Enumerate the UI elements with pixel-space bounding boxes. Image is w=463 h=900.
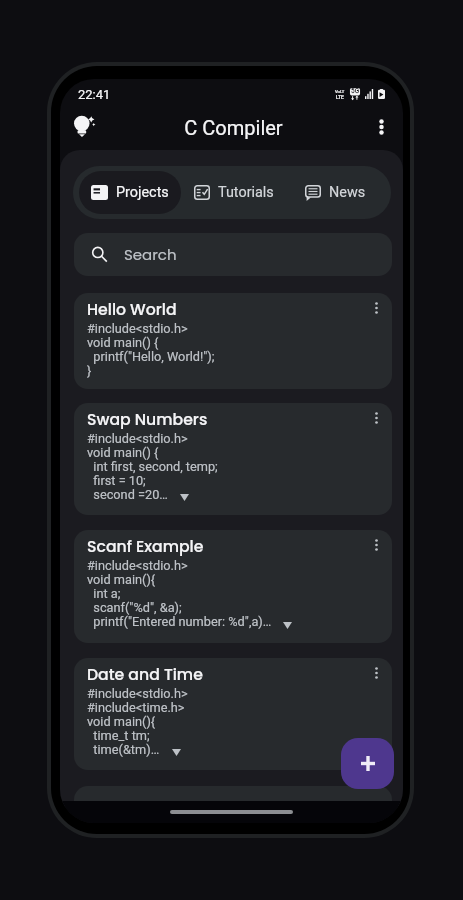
button[interactable]: Ideas xyxy=(62,105,106,149)
staticText: Date and Time xyxy=(87,664,203,686)
button[interactable]: Expand code xyxy=(176,490,192,504)
staticText: News xyxy=(329,184,366,201)
button[interactable]: Tutorials xyxy=(182,171,286,214)
button[interactable]: Swap Numbers xyxy=(74,403,392,515)
staticText: VoLTE xyxy=(335,89,345,94)
button[interactable]: Card options xyxy=(366,408,386,428)
button[interactable]: Date and Time xyxy=(74,658,392,770)
staticText: Hello World xyxy=(87,299,177,321)
staticText: #include<stdio.h> void main() { int firs… xyxy=(87,432,218,502)
staticText: LTE xyxy=(336,94,344,100)
button[interactable]: Hello World xyxy=(74,293,392,389)
staticText: Projects xyxy=(116,184,169,201)
button[interactable]: Expand code xyxy=(279,618,295,632)
button[interactable]: Search xyxy=(74,233,392,276)
button[interactable]: News xyxy=(293,171,378,214)
button[interactable]: Add new program xyxy=(341,738,394,789)
staticText: Swap Numbers xyxy=(87,409,208,431)
staticText: #include<stdio.h> void main(){ int a; sc… xyxy=(87,559,272,629)
staticText: #include<stdio.h> void main() { printf("… xyxy=(87,322,215,378)
button[interactable]: Scanf Example xyxy=(74,530,392,643)
staticText: Tutorials xyxy=(218,184,274,201)
staticText: Search xyxy=(124,244,177,265)
button[interactable]: Expand code xyxy=(168,745,184,759)
staticText: #include<stdio.h> #include<time.h> void … xyxy=(87,687,188,757)
staticText: 5G xyxy=(351,87,360,95)
button[interactable]: More options xyxy=(361,107,401,147)
button[interactable] xyxy=(74,786,392,807)
staticText: 22:41 xyxy=(78,87,111,102)
button[interactable]: Card options xyxy=(366,663,386,683)
staticText: Scanf Example xyxy=(87,536,204,558)
staticText: C Compiler xyxy=(62,116,403,139)
button[interactable]: Projects xyxy=(79,171,181,214)
button[interactable]: Card options xyxy=(366,298,386,318)
button[interactable]: Card options xyxy=(366,535,386,555)
